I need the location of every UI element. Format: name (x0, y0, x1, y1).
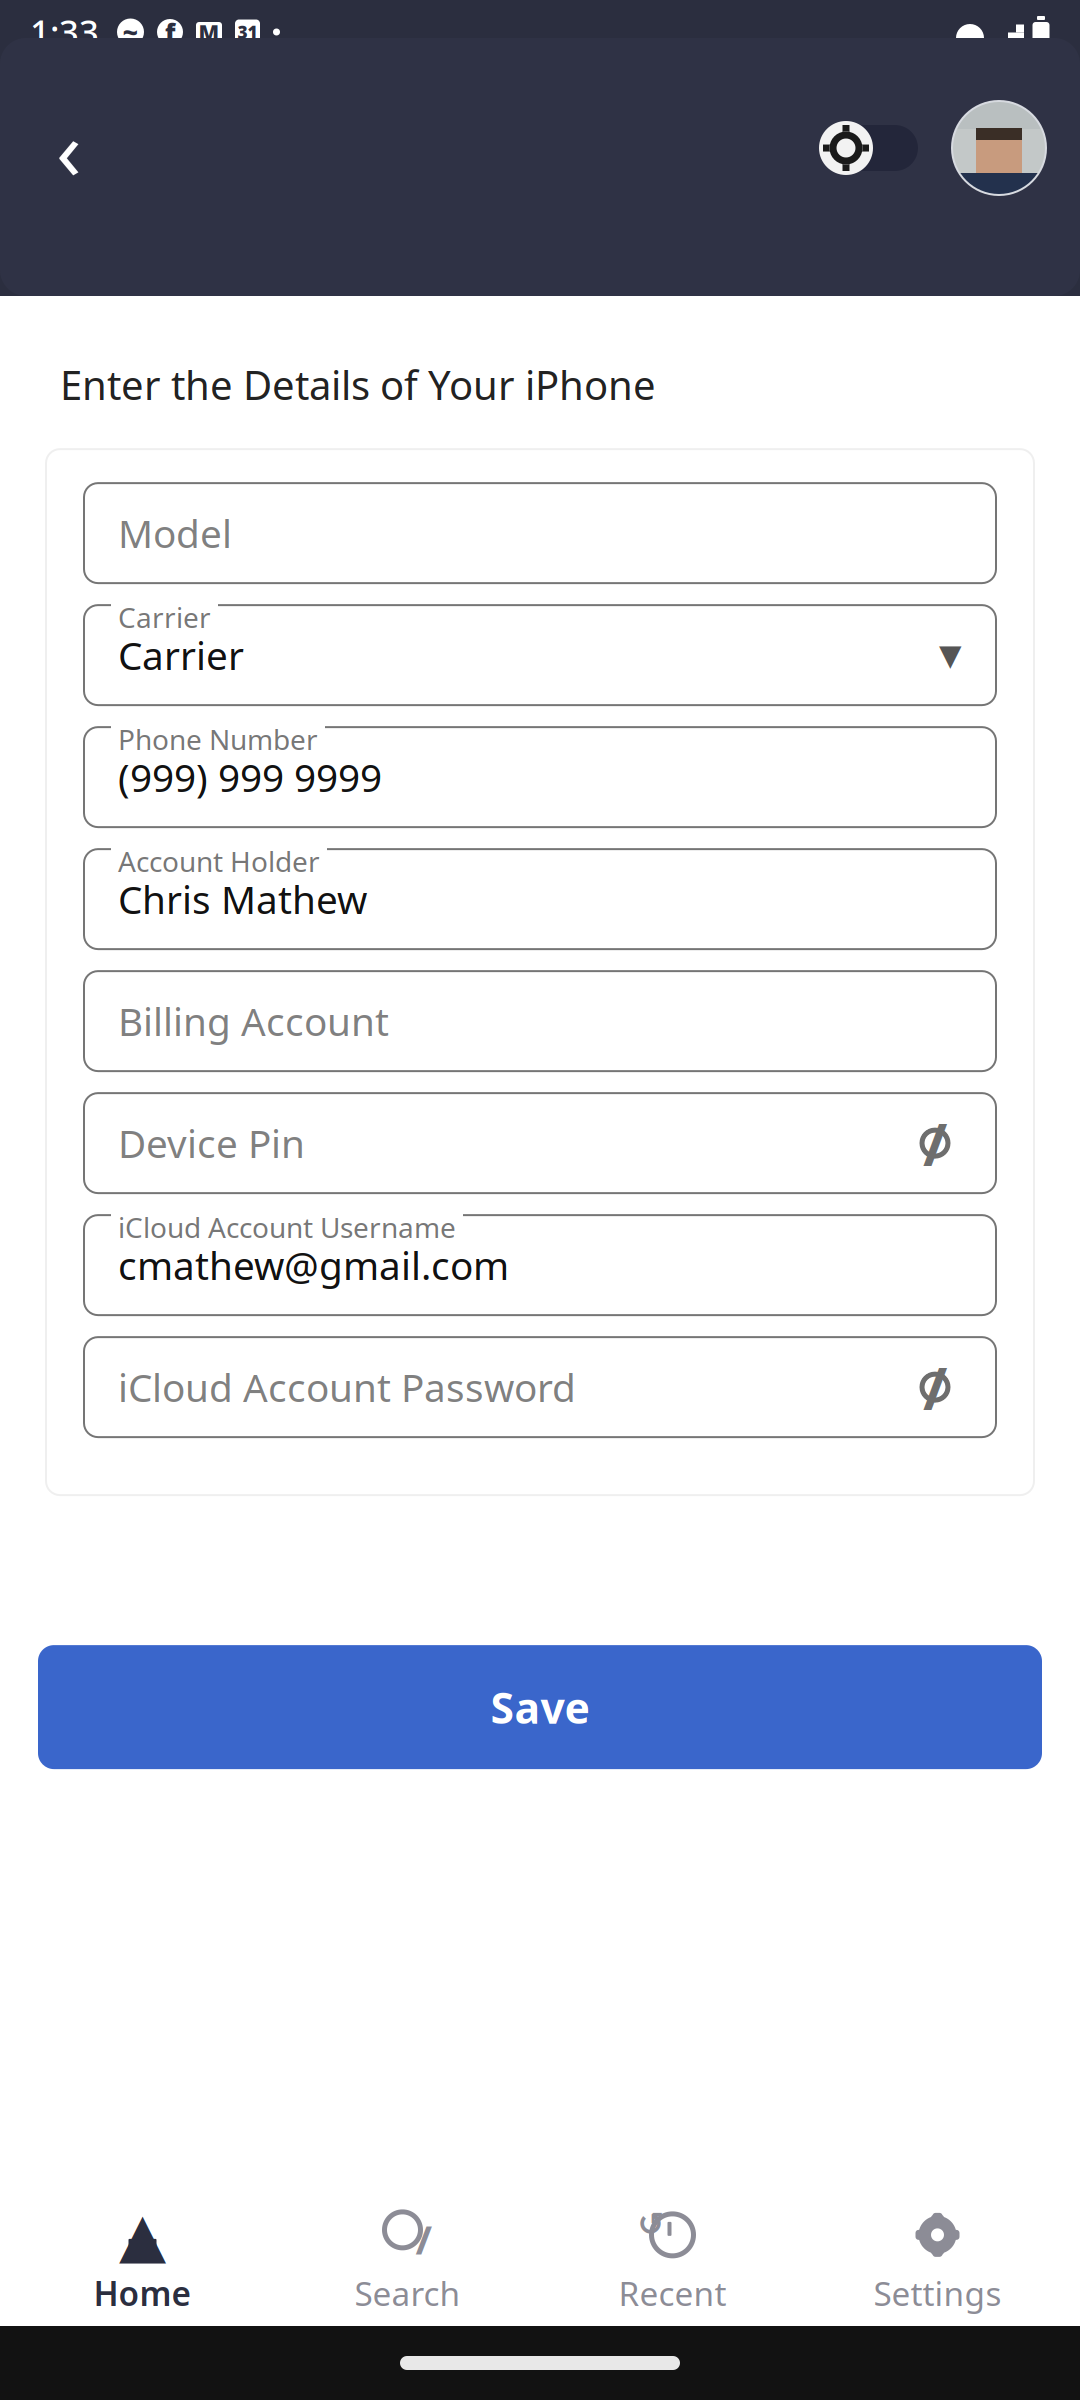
button[interactable]: Save (38, 1645, 1042, 1769)
staticText: Enter the Details of Your iPhone (60, 358, 656, 411)
staticText: Search (354, 2271, 460, 2315)
staticText: / (415, 2212, 432, 2265)
button[interactable]: Show password (908, 1116, 962, 1170)
staticText: Device Pin (118, 1117, 305, 1169)
button[interactable]: Back (34, 113, 104, 183)
staticText: / (923, 1104, 947, 1182)
staticText: Model (118, 507, 232, 559)
staticText: f (165, 15, 175, 49)
staticText: ▼ (939, 638, 962, 672)
staticText: Settings (873, 2271, 1001, 2315)
button[interactable]: Show password (908, 1360, 962, 1414)
staticText: 1:33 (30, 9, 99, 55)
staticText: Save (490, 1679, 589, 1735)
staticText: iCloud Account Password (118, 1361, 576, 1413)
staticText: ↺ (637, 2206, 664, 2242)
button[interactable]: Settings (805, 2195, 1070, 2327)
staticText: cmathew@gmail.com (118, 1239, 509, 1291)
staticText: / (923, 1348, 947, 1426)
button[interactable]: ▲ (10, 2195, 275, 2327)
button[interactable]: Profile (918, 101, 1046, 195)
button[interactable]: / (275, 2195, 540, 2327)
staticText: Phone Number (118, 721, 318, 758)
staticText: 31 (237, 20, 257, 43)
staticText: ▲ (119, 2200, 166, 2270)
button[interactable]: ↺ (540, 2195, 805, 2327)
staticText: (999) 999 9999 (118, 751, 382, 803)
staticText: ~ (122, 14, 138, 50)
staticText: Carrier (118, 629, 244, 681)
staticText: Carrier (118, 599, 211, 636)
staticText: Home (93, 2271, 191, 2315)
button[interactable]: Toggle dark mode (818, 120, 918, 176)
staticText: Account Holder (118, 843, 320, 880)
staticText: M (198, 18, 219, 46)
staticText: iCloud Account Username (118, 1209, 456, 1246)
staticText: Chris Mathew (118, 873, 367, 925)
staticText: Recent (618, 2271, 726, 2315)
staticText: Billing Account (118, 995, 389, 1047)
staticText: ‹ (56, 93, 82, 203)
